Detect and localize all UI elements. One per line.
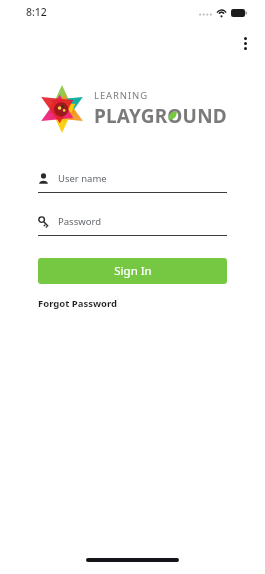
staticText: 8:12 [26, 5, 47, 19]
staticText: PLAYGROUND [94, 103, 227, 129]
staticText: Password [58, 215, 101, 228]
button[interactable]: Forgot Password [38, 297, 118, 310]
button[interactable]: More options [234, 32, 256, 54]
button[interactable]: Password [38, 213, 227, 236]
staticText: Sign In [114, 263, 152, 279]
button[interactable]: User name [38, 170, 227, 193]
button[interactable]: Sign In [38, 258, 227, 284]
staticText: User name [58, 172, 107, 185]
staticText: LEARNING [94, 89, 149, 102]
staticText: Forgot Password [38, 297, 118, 310]
